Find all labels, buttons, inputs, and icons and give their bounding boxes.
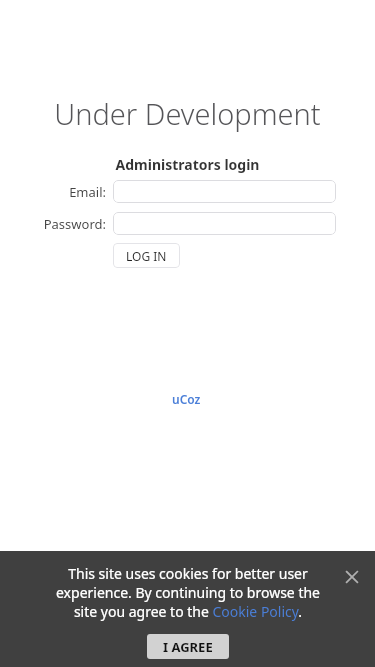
staticText: uCoz [172, 391, 201, 407]
button[interactable]: uCoz [168, 389, 205, 409]
staticText: Administrators login [0, 155, 375, 174]
staticText: LOG IN [126, 248, 167, 264]
staticText: I AGREE [163, 638, 213, 656]
button[interactable] [113, 180, 336, 203]
button[interactable]: Close [338, 563, 366, 591]
staticText: Email: [0, 183, 106, 201]
staticText: This site uses cookies for better user e… [43, 564, 333, 621]
button[interactable]: LOG IN [113, 243, 180, 268]
staticText: Under Development [0, 94, 375, 133]
button[interactable] [113, 212, 336, 235]
staticText: Password: [0, 215, 106, 233]
button[interactable]: I AGREE [147, 634, 229, 659]
